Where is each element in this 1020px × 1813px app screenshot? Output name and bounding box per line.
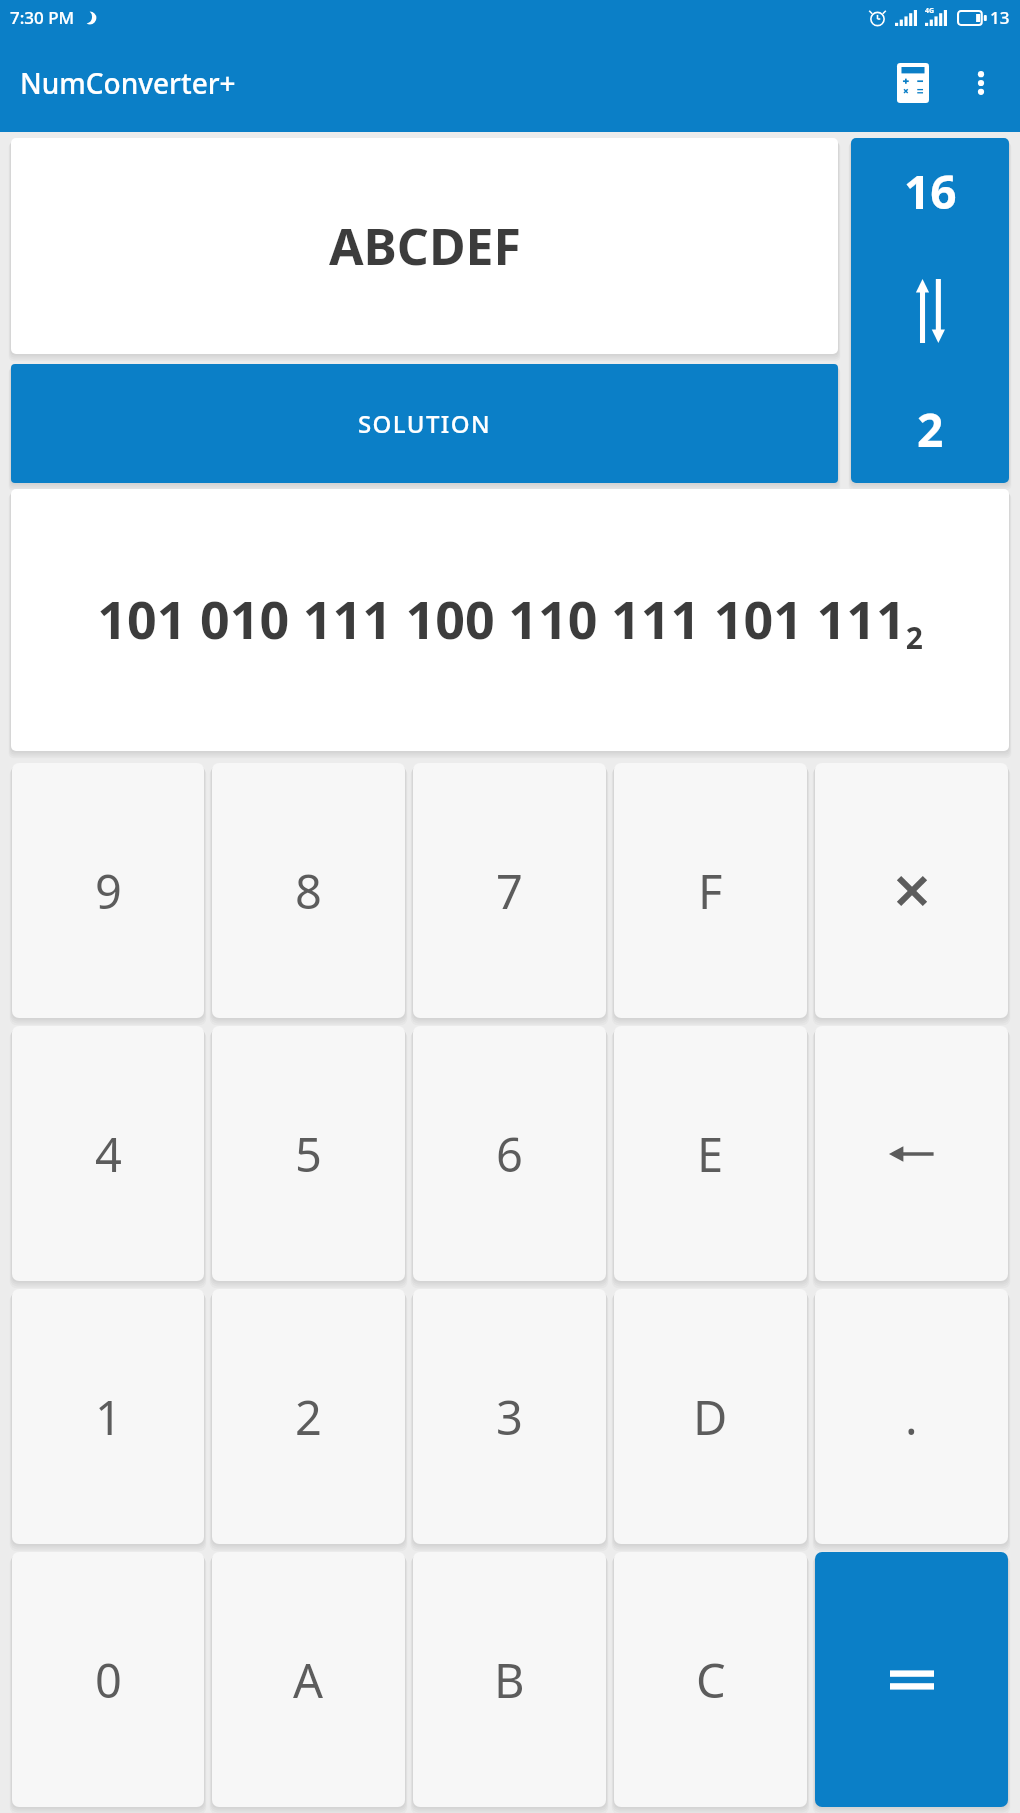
button[interactable]: 5 <box>212 1026 405 1281</box>
button[interactable]: 3 <box>413 1289 606 1544</box>
staticText: 0 <box>95 1648 122 1712</box>
button[interactable]: 0 <box>12 1552 204 1807</box>
button[interactable]: 16 <box>851 138 1009 483</box>
staticText: 3 <box>496 1385 523 1449</box>
button[interactable]: 8 <box>212 763 405 1018</box>
staticText: . <box>905 1385 918 1449</box>
staticText: 13 <box>990 6 1010 29</box>
staticText: 6 <box>496 1122 523 1186</box>
staticText: 2 <box>295 1385 322 1449</box>
staticText: 16 <box>904 160 957 223</box>
button[interactable]: E <box>614 1026 807 1281</box>
staticText: 7 <box>496 859 523 923</box>
button[interactable]: C <box>614 1552 807 1807</box>
button[interactable]: . <box>815 1289 1008 1544</box>
button[interactable]: 2 <box>212 1289 405 1544</box>
staticText: 5 <box>295 1122 322 1186</box>
staticText: 2 <box>917 398 944 461</box>
button[interactable]: More options <box>952 54 1010 112</box>
staticText: F <box>698 859 723 923</box>
button[interactable]: Backspace <box>815 1026 1008 1281</box>
staticText: 4G <box>925 6 935 16</box>
staticText: 7:30 PM <box>10 6 75 29</box>
button[interactable]: 6 <box>413 1026 606 1281</box>
button[interactable]: F <box>614 763 807 1018</box>
button[interactable]: Clear <box>815 763 1008 1018</box>
staticText: D <box>693 1385 728 1449</box>
staticText: C <box>696 1648 726 1712</box>
staticText: ABCDEF <box>329 212 521 280</box>
button[interactable]: D <box>614 1289 807 1544</box>
button[interactable]: 4 <box>12 1026 204 1281</box>
staticText: A <box>293 1648 324 1712</box>
staticText: 1 <box>95 1385 122 1449</box>
staticText: NumConverter+ <box>20 64 236 102</box>
button[interactable]: 9 <box>12 763 204 1018</box>
staticText: 8 <box>295 859 322 923</box>
button[interactable]: Equals <box>815 1552 1008 1807</box>
staticText: B <box>494 1648 525 1712</box>
button[interactable]: SOLUTION <box>11 364 838 483</box>
staticText: SOLUTION <box>358 407 491 440</box>
button[interactable]: Calculator <box>884 54 942 112</box>
staticText: E <box>697 1122 724 1186</box>
button[interactable]: B <box>413 1552 606 1807</box>
staticText: 101 010 111 100 110 111 101 1112 <box>97 583 923 658</box>
staticText: 4 <box>95 1122 122 1186</box>
button[interactable]: A <box>212 1552 405 1807</box>
button[interactable]: 7 <box>413 763 606 1018</box>
button[interactable]: 1 <box>12 1289 204 1544</box>
staticText: 9 <box>95 859 122 923</box>
